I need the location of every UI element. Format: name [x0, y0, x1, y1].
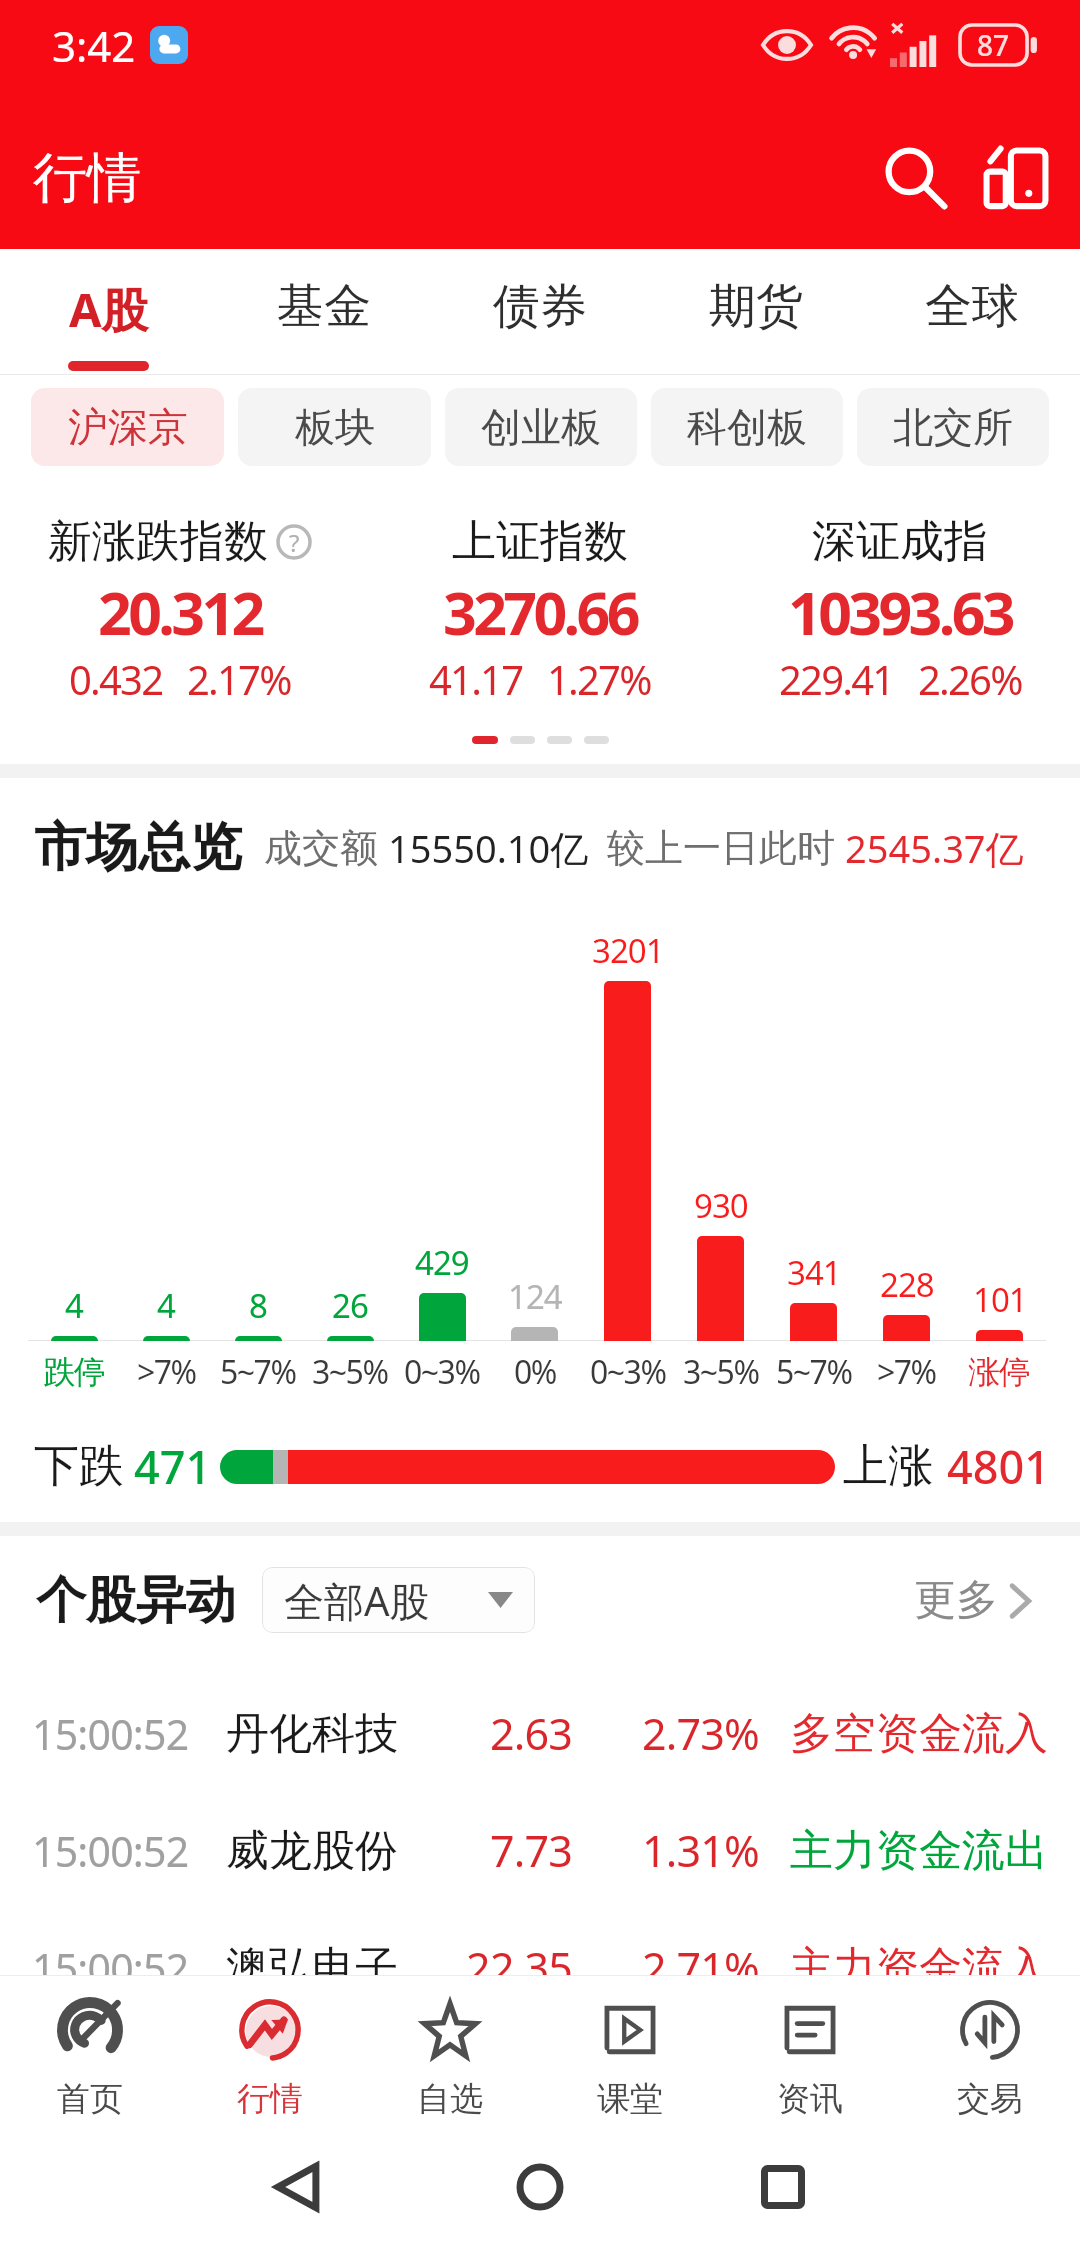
staticText: 2.26% [918, 652, 1022, 706]
staticText: 7.73 [424, 1821, 572, 1880]
staticText: 22.35 [424, 1938, 572, 1997]
staticText: 澳弘电子 [226, 1941, 424, 1995]
staticText: 科创板 [687, 402, 807, 452]
staticText: 2.71% [572, 1938, 759, 1997]
staticText: 87 [977, 26, 1010, 64]
staticText: 26 [332, 1283, 368, 1328]
button[interactable]: 上证指数 [360, 514, 720, 706]
button[interactable]: 15:00:52 [0, 1675, 1080, 1792]
button[interactable]: 主页 [495, 2142, 585, 2232]
staticText: 229.41 [779, 652, 894, 706]
staticText: 10393.63 [788, 572, 1013, 652]
staticText: 期货 [709, 277, 803, 336]
button[interactable]: 深证成指 [720, 514, 1080, 706]
staticText: 0~3% [404, 1350, 480, 1394]
staticText: 20.312 [98, 572, 262, 652]
button[interactable]: 债券 [432, 249, 648, 375]
staticText: ? [289, 526, 300, 559]
staticText: 北交所 [893, 402, 1013, 452]
button[interactable]: 切换视图 [966, 128, 1066, 228]
staticText: 板块 [295, 402, 375, 452]
staticText: 主力资金流出 [790, 1824, 1048, 1878]
staticText: 930 [694, 1183, 748, 1228]
staticText: 市场总览 [34, 815, 242, 881]
staticText: 2545.37亿 [845, 822, 1024, 874]
staticText: 课堂 [597, 2078, 663, 2120]
button[interactable]: 沪深京 [31, 388, 224, 466]
staticText: 行情 [33, 144, 141, 212]
staticText: >7% [137, 1350, 196, 1394]
staticText: 首页 [57, 2078, 123, 2120]
staticText: 沪深京 [68, 402, 188, 452]
button[interactable]: 创业板 [445, 388, 637, 466]
button[interactable]: 返回 [252, 2142, 342, 2232]
staticText: 交易 [957, 2078, 1023, 2120]
staticText: >7% [877, 1350, 936, 1394]
button[interactable]: 搜索 [866, 128, 966, 228]
staticText: 3201 [592, 928, 664, 973]
staticText: 上证指数 [452, 514, 628, 569]
button[interactable]: 首页 [0, 1976, 180, 2130]
button[interactable]: 新涨跌指数 [0, 514, 360, 706]
button[interactable]: 全球 [864, 249, 1080, 375]
staticText: 2.17% [187, 652, 291, 706]
staticText: 跌停 [44, 1352, 105, 1392]
button[interactable]: 交易 [900, 1976, 1080, 2130]
staticText: 341 [787, 1250, 841, 1295]
staticText: 5~7% [776, 1350, 852, 1394]
staticText: 涨停 [969, 1352, 1030, 1392]
staticText: 1.31% [572, 1821, 759, 1880]
staticText: 较上一日此时 [607, 824, 835, 872]
staticText: 全部A股 [284, 1573, 430, 1628]
staticText: 2.73% [572, 1704, 759, 1763]
button[interactable]: 期货 [648, 249, 864, 375]
staticText: 深证成指 [812, 514, 988, 569]
staticText: 3~5% [683, 1350, 759, 1394]
staticText: 个股异动 [36, 1569, 236, 1632]
staticText: 威龙股份 [226, 1824, 424, 1878]
staticText: 0.432 [69, 652, 163, 706]
staticText: 4801 [947, 1436, 1050, 1497]
button[interactable]: 15:00:52 [0, 1792, 1080, 1909]
staticText: 丹化科技 [226, 1707, 424, 1761]
staticText: 41.17 [429, 652, 523, 706]
staticText: 4 [65, 1283, 83, 1328]
button[interactable]: 科创板 [651, 388, 843, 466]
button[interactable]: 课堂 [540, 1976, 720, 2130]
staticText: 0% [514, 1350, 556, 1394]
button[interactable]: 更多 [914, 1574, 1032, 1627]
staticText: 下跌 [34, 1438, 124, 1495]
staticText: 主力资金流入 [790, 1941, 1048, 1995]
staticText: 成交额 [264, 824, 378, 872]
staticText: 1.27% [547, 652, 651, 706]
staticText: 多空资金流入 [790, 1707, 1048, 1761]
staticText: 自选 [417, 2078, 483, 2120]
button[interactable]: 自选 [360, 1976, 540, 2130]
staticText: 上涨 [843, 1438, 933, 1495]
staticText: 基金 [277, 277, 371, 336]
staticText: 5~7% [220, 1350, 296, 1394]
staticText: 8 [249, 1283, 267, 1328]
staticText: 15550.10亿 [388, 822, 589, 874]
staticText: 471 [134, 1436, 212, 1497]
button[interactable]: 全部A股 [262, 1567, 535, 1633]
button[interactable]: 最近任务 [738, 2142, 828, 2232]
staticText: 228 [880, 1262, 934, 1307]
button[interactable]: 资讯 [720, 1976, 900, 2130]
staticText: 全球 [925, 277, 1019, 336]
staticText: 资讯 [777, 2078, 843, 2120]
staticText: 124 [508, 1274, 562, 1319]
button[interactable]: 板块 [238, 388, 431, 466]
staticText: 新涨跌指数 [48, 514, 268, 569]
button[interactable]: 行情 [180, 1976, 360, 2130]
button[interactable]: 15:00:52 [0, 1909, 1080, 2026]
staticText: 3~5% [312, 1350, 388, 1394]
staticText: 15:00:52 [32, 1940, 226, 1996]
staticText: 101 [973, 1277, 1027, 1322]
staticText: 3270.66 [443, 572, 637, 652]
staticText: 债券 [493, 277, 587, 336]
button[interactable]: 基金 [216, 249, 432, 375]
staticText: 4 [157, 1283, 175, 1328]
button[interactable]: 北交所 [857, 388, 1049, 466]
button[interactable]: A股 [0, 249, 216, 375]
